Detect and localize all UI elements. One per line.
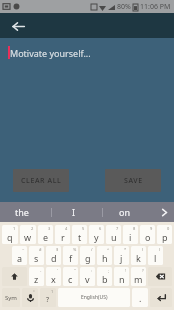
button[interactable]: Voice input <box>22 288 38 307</box>
staticText: # <box>39 247 42 252</box>
staticText: " <box>74 268 76 273</box>
button[interactable]: ? <box>131 267 146 286</box>
button[interactable]: # <box>29 246 44 265</box>
staticText: ! <box>125 268 127 273</box>
staticText: q <box>7 231 13 243</box>
staticText: SAVE <box>124 176 143 186</box>
button[interactable]: : <box>80 267 95 286</box>
button[interactable]: I <box>52 202 103 222</box>
staticText: w <box>24 231 32 243</box>
staticText: on <box>119 206 131 218</box>
staticText: English(US) <box>81 294 108 301</box>
staticText: Sym <box>5 294 17 302</box>
button[interactable]: 0 <box>157 225 172 244</box>
staticText: n <box>119 273 125 285</box>
button[interactable]: 2 <box>20 225 36 244</box>
button[interactable]: Shift <box>2 267 27 286</box>
staticText: ? <box>46 295 50 305</box>
staticText: 9 <box>150 226 153 231</box>
staticText: I <box>72 206 76 218</box>
button[interactable]: * <box>114 246 129 265</box>
button[interactable]: 7 <box>106 225 121 244</box>
staticText: 7 <box>116 226 119 231</box>
button[interactable]: English(US) <box>58 288 130 307</box>
button[interactable]: Sym <box>2 288 20 307</box>
button[interactable]: ^ <box>97 246 112 265</box>
button[interactable]: More suggestions <box>154 202 174 222</box>
staticText: 0 <box>167 226 170 231</box>
staticText: ~ <box>22 247 25 252</box>
staticText: ° <box>33 289 35 294</box>
staticText: d <box>51 252 57 264</box>
staticText: a <box>17 252 23 264</box>
staticText: ' <box>57 268 58 273</box>
staticText: 3 <box>48 226 51 231</box>
staticText: u <box>111 231 117 243</box>
button[interactable]: % <box>63 246 78 265</box>
staticText: % <box>73 247 77 252</box>
button[interactable]: 1 <box>40 288 56 307</box>
staticText: 80% <box>117 2 131 12</box>
staticText: 1 <box>13 226 16 231</box>
staticText: 4 <box>65 226 68 231</box>
staticText: b <box>102 273 108 285</box>
staticText: v <box>85 273 90 285</box>
staticText: 8 <box>133 226 136 231</box>
button[interactable]: ! <box>114 267 129 286</box>
button[interactable]: / <box>80 246 95 265</box>
button[interactable]: Enter <box>150 288 172 307</box>
button[interactable]: SAVE <box>105 169 161 192</box>
staticText: ) <box>159 247 161 252</box>
staticText: 5 <box>82 226 85 231</box>
button[interactable]: " <box>63 267 78 286</box>
staticText: the <box>15 206 29 218</box>
button[interactable]: Motivate yourself... <box>8 46 174 59</box>
button[interactable]: the <box>0 202 52 222</box>
staticText: l <box>154 252 157 264</box>
button[interactable]: 3 <box>38 225 53 244</box>
staticText: : <box>91 268 93 273</box>
staticText: p <box>162 231 168 243</box>
button[interactable]: ' <box>46 267 61 286</box>
button[interactable]: 5 <box>72 225 87 244</box>
button[interactable]: Back <box>8 16 28 36</box>
staticText: 2 <box>31 226 34 231</box>
staticText: 11:06 PM <box>140 2 171 12</box>
staticText: h <box>102 252 108 264</box>
staticText: i <box>129 231 132 243</box>
button[interactable]: ( <box>131 246 146 265</box>
button[interactable]: 8 <box>123 225 138 244</box>
button[interactable]: 1 <box>2 225 18 244</box>
staticText: k <box>136 252 141 264</box>
button[interactable]: 6 <box>89 225 104 244</box>
button[interactable]: Backspace <box>148 267 172 286</box>
staticText: j <box>120 252 123 264</box>
button[interactable]: - <box>29 267 44 286</box>
button[interactable]: ; <box>97 267 112 286</box>
button[interactable]: on <box>103 202 154 222</box>
staticText: ; <box>108 268 110 273</box>
button[interactable]: ~ <box>12 246 27 265</box>
staticText: CLEAR ALL <box>21 176 62 186</box>
staticText: - <box>40 268 42 273</box>
button[interactable]: CLEAR ALL <box>13 169 69 192</box>
staticText: / <box>91 247 93 252</box>
staticText: Motivate yourself... <box>10 47 91 59</box>
staticText: m <box>134 273 143 285</box>
button[interactable]: 4 <box>55 225 70 244</box>
staticText: ( <box>142 247 144 252</box>
staticText: $ <box>56 247 59 252</box>
button[interactable]: . <box>132 288 148 307</box>
staticText: t <box>78 231 82 243</box>
staticText: . <box>139 292 142 304</box>
staticText: o <box>145 231 151 243</box>
button[interactable]: $ <box>46 246 61 265</box>
button[interactable]: 9 <box>140 225 155 244</box>
staticText: e <box>43 231 49 243</box>
staticText: c <box>68 273 73 285</box>
staticText: ? <box>142 268 144 273</box>
staticText: r <box>61 231 65 243</box>
button[interactable]: ) <box>148 246 163 265</box>
staticText: y <box>94 231 99 243</box>
staticText: z <box>34 273 39 285</box>
